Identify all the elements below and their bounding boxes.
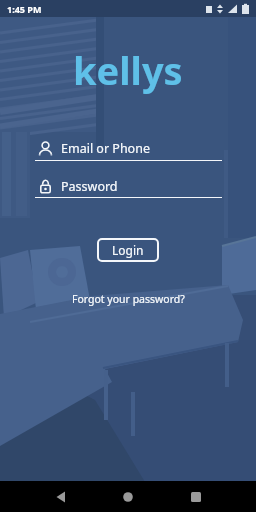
- button[interactable]: Password: [38, 176, 222, 196]
- button[interactable]: Forgot your password?: [72, 292, 185, 306]
- staticText: kellys: [73, 44, 183, 96]
- staticText: Password: [61, 178, 118, 195]
- button[interactable]: [189, 490, 203, 504]
- staticText: Email or Phone: [61, 140, 150, 157]
- button[interactable]: Login: [97, 238, 159, 262]
- staticText: Login: [112, 242, 144, 258]
- button[interactable]: Email or Phone: [38, 138, 222, 158]
- button[interactable]: [121, 490, 135, 504]
- staticText: 1:45 PM: [7, 3, 42, 15]
- button[interactable]: [54, 490, 68, 504]
